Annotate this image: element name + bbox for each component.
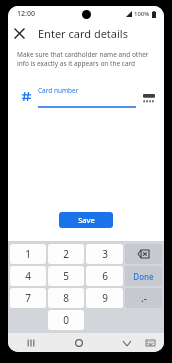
staticText: 0 [63, 313, 69, 327]
staticText: 5 [63, 269, 69, 283]
button[interactable]: 5 [48, 266, 84, 286]
staticText: Make sure that cardholder name and other… [17, 50, 155, 68]
staticText: Card number [38, 86, 79, 95]
staticText: Save [78, 215, 95, 225]
button[interactable]: Change keyboard [142, 335, 158, 351]
staticText: 100% [134, 10, 150, 18]
staticText: 1 [25, 247, 31, 261]
staticText: 4 [25, 269, 31, 283]
staticText: 12:00 [17, 9, 35, 19]
staticText: 9 [102, 291, 108, 305]
staticText: 8 [63, 291, 69, 305]
button[interactable]: 2 [48, 244, 84, 264]
staticText: .- [141, 291, 147, 305]
button[interactable]: Save [59, 212, 113, 228]
button[interactable]: Card number [8, 78, 164, 108]
button[interactable]: 0 [48, 310, 84, 330]
button[interactable]: 8 [48, 288, 84, 308]
button[interactable]: Recent apps [22, 334, 40, 352]
button[interactable]: 4 [10, 266, 46, 286]
button[interactable]: Backspace [125, 244, 162, 264]
button[interactable]: 6 [86, 266, 123, 286]
staticText: Done [133, 271, 154, 282]
button[interactable]: .- [125, 288, 162, 308]
staticText: Enter card details [38, 26, 128, 41]
staticText: 6 [102, 269, 108, 283]
button[interactable]: Done [125, 266, 162, 286]
staticText: 2 [63, 247, 69, 261]
button[interactable]: 3 [86, 244, 123, 264]
button[interactable]: Home [70, 334, 88, 352]
button[interactable]: 9 [86, 288, 123, 308]
staticText: 7 [25, 291, 31, 305]
button[interactable]: 7 [10, 288, 46, 308]
button[interactable]: Hide keyboard [118, 334, 136, 352]
button[interactable]: Close [8, 22, 30, 44]
button[interactable]: Scan card [140, 88, 158, 108]
button[interactable]: 1 [10, 244, 46, 264]
staticText: 3 [102, 247, 108, 261]
